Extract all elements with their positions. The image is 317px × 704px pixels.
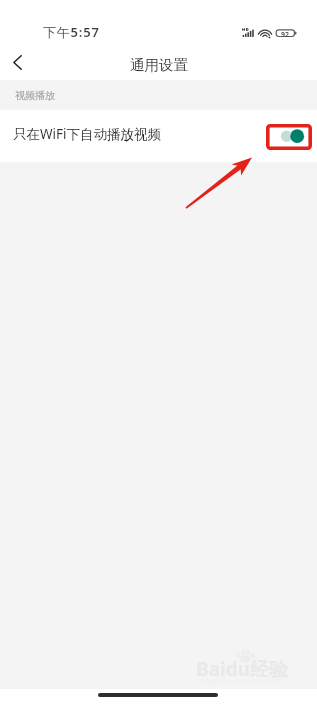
button[interactable]: 只在WiFi下自动播放视频: [0, 110, 317, 162]
staticText: 通用设置: [130, 56, 188, 74]
staticText: 视频播放: [15, 89, 55, 102]
staticText: 下午5:57: [43, 23, 100, 41]
staticText: 只在WiFi下自动播放视频: [13, 125, 162, 143]
staticText: Baidu经验: [196, 656, 289, 682]
staticText: 92: [281, 30, 290, 39]
button[interactable]: Back: [0, 45, 34, 80]
button[interactable]: 只在WiFi下自动播放视频 开关: [280, 129, 304, 144]
